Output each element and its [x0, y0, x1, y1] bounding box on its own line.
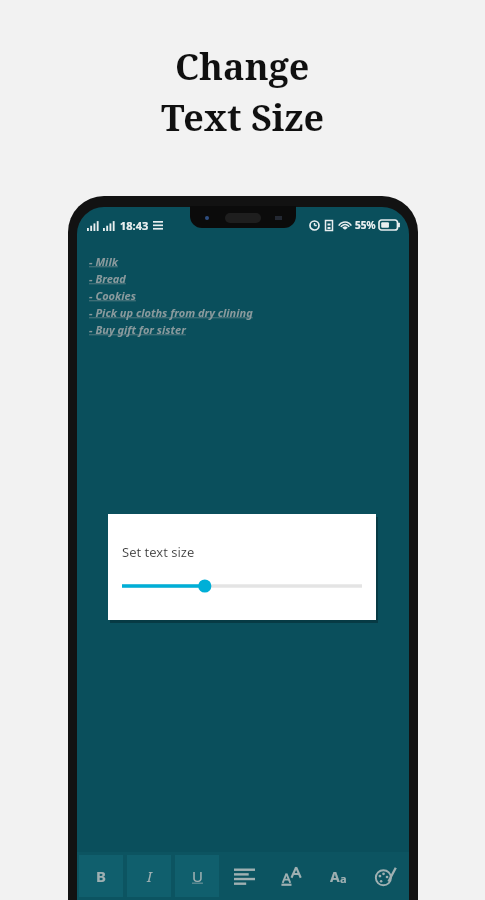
staticText: I	[147, 866, 152, 886]
staticText: B	[96, 866, 106, 886]
button[interactable]: - Bread	[89, 271, 126, 286]
button[interactable]: Change text color	[362, 852, 409, 900]
staticText: A	[330, 867, 340, 886]
staticText: U	[192, 866, 203, 886]
button[interactable]: Align text	[221, 852, 268, 900]
staticText: Change	[175, 42, 310, 91]
staticText: Set text size	[122, 543, 195, 561]
button[interactable]: Change text size	[315, 852, 362, 900]
button[interactable]: - Milk	[89, 254, 118, 269]
button[interactable]: - Cookies	[89, 288, 136, 303]
staticText: 55%	[355, 218, 376, 232]
button[interactable]: Change font	[268, 852, 315, 900]
button[interactable]: I	[127, 855, 171, 897]
button[interactable]: Text size slider	[122, 576, 362, 596]
staticText: a	[340, 871, 347, 886]
staticText: 18:43	[120, 218, 149, 233]
button[interactable]: B	[79, 855, 123, 897]
button[interactable]: - Buy gift for sister	[89, 322, 186, 337]
staticText: Text Size	[161, 93, 325, 142]
button[interactable]: - Pick up cloths from dry clining	[89, 305, 253, 320]
button[interactable]: U	[175, 855, 219, 897]
